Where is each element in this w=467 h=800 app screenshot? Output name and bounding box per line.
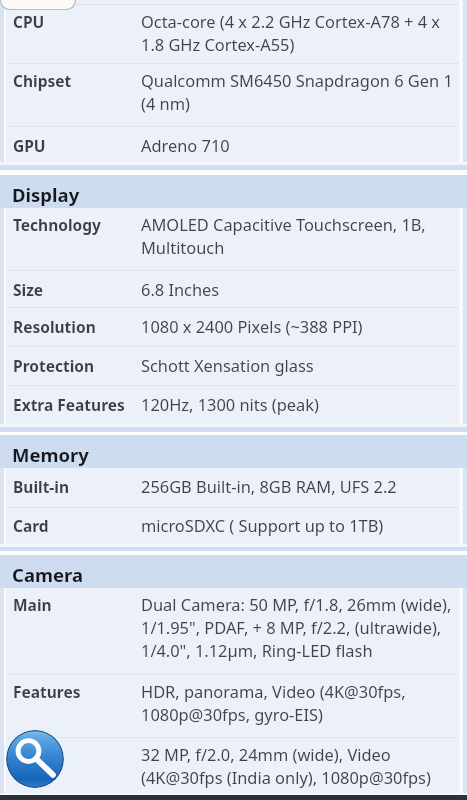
staticText: Selfie: [13, 743, 56, 766]
button[interactable]: Protection: [6, 347, 459, 386]
button[interactable]: Technology: [6, 208, 459, 271]
staticText: Features: [13, 680, 81, 703]
button[interactable]: Tab: [0, 0, 76, 10]
button[interactable]: Size: [6, 271, 459, 308]
staticText: Protection: [13, 354, 95, 377]
button[interactable]: Extra Features: [6, 386, 459, 424]
staticText: CPU: [13, 10, 45, 33]
button[interactable]: Features: [6, 675, 459, 738]
button[interactable]: Card: [6, 508, 459, 544]
button[interactable]: Selfie: [6, 738, 459, 793]
staticText: Camera: [12, 563, 84, 587]
staticText: Built-in: [13, 475, 70, 498]
staticText: 32 MP, f/2.0, 24mm (wide), Video (4K@30f…: [141, 743, 431, 789]
staticText: Dual Camera: 50 MP, f/1.8, 26mm (wide), …: [141, 593, 452, 662]
button[interactable]: Resolution: [6, 308, 459, 347]
staticText: 6.8 Inches: [141, 278, 220, 301]
button[interactable]: Built-in: [6, 468, 459, 508]
staticText: Resolution: [13, 315, 96, 338]
button[interactable]: GPU: [6, 127, 459, 162]
staticText: Schott Xensation glass: [141, 354, 314, 377]
staticText: Size: [13, 278, 44, 301]
staticText: AMOLED Capacitive Touchscreen, 1B, Multi…: [141, 213, 426, 259]
button[interactable]: CPU: [6, 5, 459, 64]
button[interactable]: Search: [6, 730, 64, 788]
staticText: Octa-core (4 x 2.2 GHz Cortex-A78 + 4 x …: [141, 10, 440, 56]
staticText: 1080 x 2400 Pixels (~388 PPI): [141, 315, 363, 338]
staticText: 256GB Built-in, 8GB RAM, UFS 2.2: [141, 475, 397, 498]
button[interactable]: Main: [6, 588, 459, 675]
staticText: GPU: [13, 134, 46, 157]
staticText: Chipset: [13, 69, 72, 92]
staticText: Memory: [12, 443, 89, 467]
staticText: Card: [13, 514, 49, 537]
button[interactable]: Chipset: [6, 64, 459, 127]
button[interactable]: [6, 0, 459, 5]
staticText: HDR, panorama, Video (4K@30fps, 1080p@30…: [141, 680, 406, 726]
staticText: Display: [12, 183, 80, 207]
staticText: microSDXC ( Support up to 1TB): [141, 514, 384, 537]
staticText: Main: [13, 593, 52, 616]
staticText: Extra Features: [13, 393, 125, 416]
staticText: Adreno 710: [141, 134, 230, 157]
staticText: 120Hz, 1300 nits (peak): [141, 393, 319, 416]
staticText: Technology: [13, 213, 101, 236]
staticText: Qualcomm SM6450 Snapdragon 6 Gen 1 (4 nm…: [141, 69, 453, 115]
